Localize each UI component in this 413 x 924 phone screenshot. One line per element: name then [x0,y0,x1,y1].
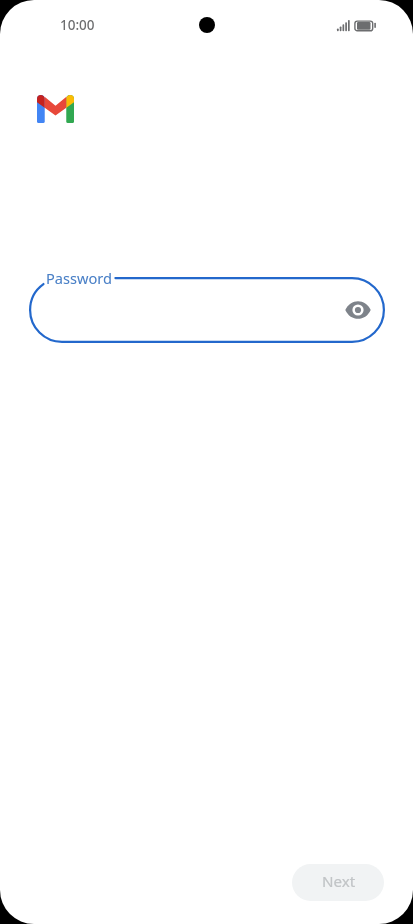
button[interactable]: Password text field [29,277,385,343]
button[interactable]: Show password [336,288,380,332]
staticText: 10:00 [60,16,95,34]
staticText: Password [46,268,113,288]
staticText: Next [322,871,356,892]
button[interactable]: Next [292,864,384,901]
